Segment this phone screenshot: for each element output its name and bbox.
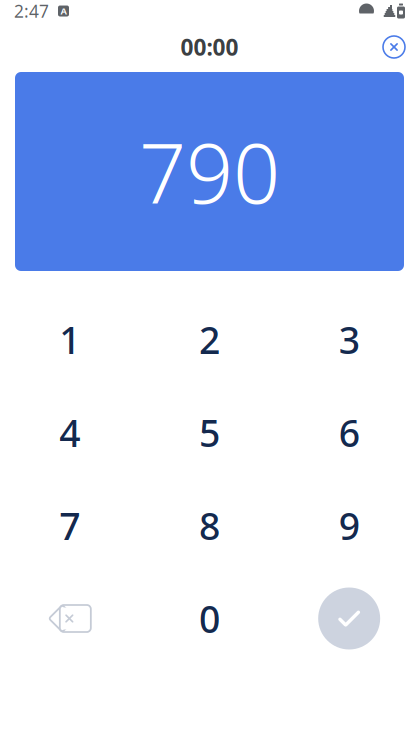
button[interactable]: 7 <box>0 479 140 572</box>
staticText: 3 <box>339 315 360 364</box>
button[interactable]: 9 <box>279 479 419 572</box>
button[interactable]: Close <box>372 25 416 69</box>
staticText: 7 <box>59 501 80 550</box>
staticText: 1 <box>59 315 80 364</box>
staticText: 2 <box>199 315 220 364</box>
staticText: 9 <box>339 501 360 550</box>
button[interactable]: Backspace <box>0 572 140 665</box>
staticText: 790 <box>139 117 280 226</box>
staticText: 8 <box>199 501 220 550</box>
staticText: A <box>60 5 66 17</box>
button[interactable]: 1 <box>0 293 140 386</box>
button[interactable]: 8 <box>140 479 279 572</box>
button[interactable]: 3 <box>279 293 419 386</box>
staticText: 0 <box>199 594 220 643</box>
staticText: 2:47 <box>14 0 49 22</box>
staticText: 00:00 <box>180 32 238 62</box>
button[interactable]: 5 <box>140 386 279 479</box>
button[interactable]: 2 <box>140 293 279 386</box>
button[interactable]: 0 <box>140 572 279 665</box>
button[interactable]: 4 <box>0 386 140 479</box>
button[interactable]: 6 <box>279 386 419 479</box>
staticText: 5 <box>199 408 220 457</box>
staticText: 4 <box>59 408 80 457</box>
button[interactable]: Confirm <box>279 572 419 665</box>
staticText: 6 <box>339 408 360 457</box>
